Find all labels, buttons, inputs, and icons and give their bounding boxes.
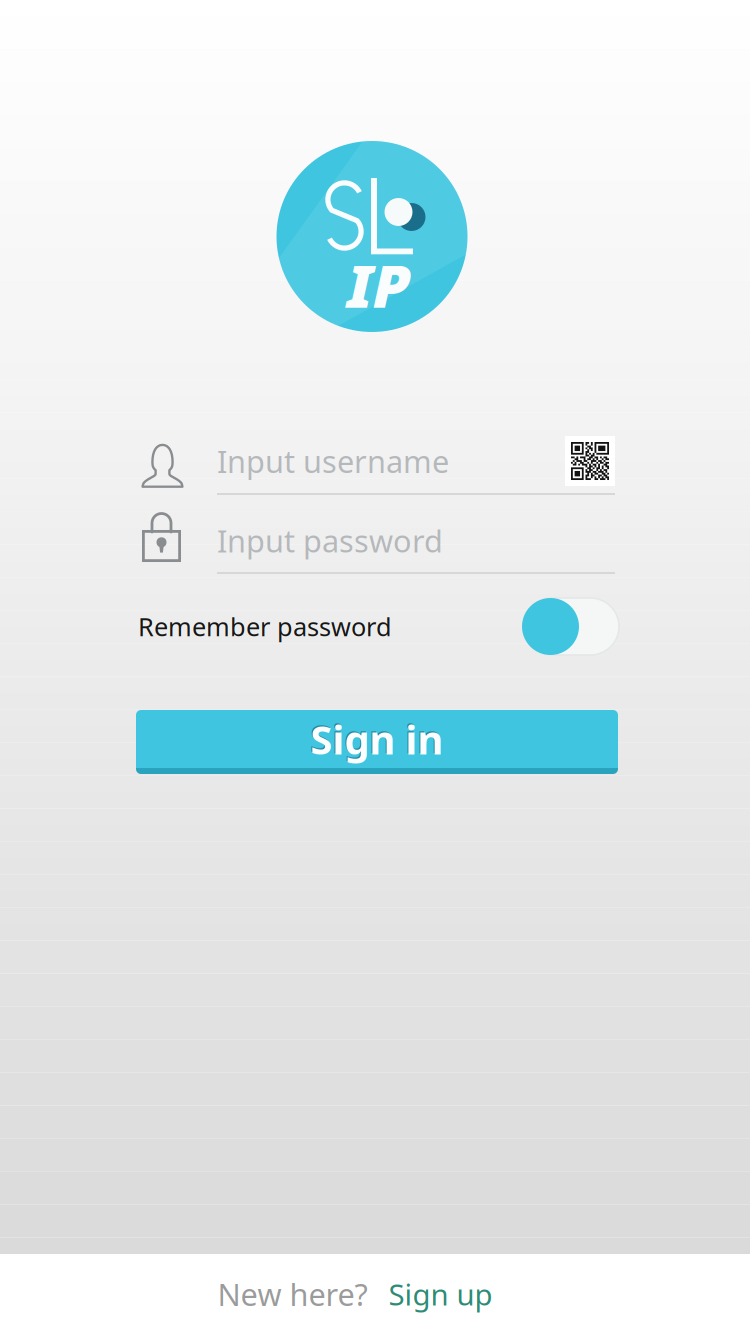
staticText: Input password [217, 520, 443, 561]
staticText: Sign in [309, 711, 442, 764]
button[interactable]: Sign in [134, 710, 616, 774]
staticText: IP [352, 246, 415, 324]
staticText: Input username [217, 441, 449, 481]
button[interactable]: Scan QR code [565, 436, 615, 486]
button[interactable]: Remember password [134, 598, 615, 655]
staticText: Sign in [310, 712, 443, 765]
staticText: Sign up [388, 1274, 492, 1313]
staticText: Remember password [138, 610, 392, 643]
staticText: New here? [217, 1274, 367, 1314]
button[interactable]: Sign up [388, 1274, 492, 1313]
